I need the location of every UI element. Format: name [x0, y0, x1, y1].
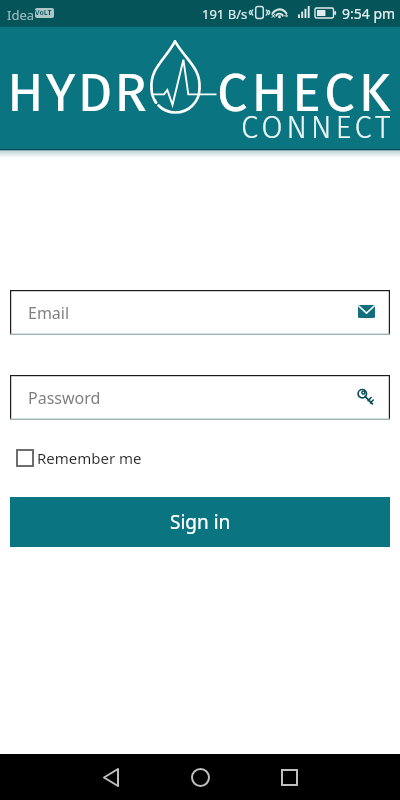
button[interactable]: Home: [170, 754, 230, 800]
staticText: CONNECT: [241, 109, 395, 146]
staticText: 191 B/s: [202, 5, 248, 23]
button[interactable]: Sign in: [10, 497, 390, 547]
staticText: Remember me: [37, 448, 142, 468]
staticText: Email: [28, 302, 70, 324]
button[interactable]: Remember me: [16, 448, 142, 468]
staticText: Password: [28, 387, 101, 409]
staticText: CHECK: [217, 61, 395, 126]
staticText: Idea: [7, 6, 35, 24]
staticText: HYDR: [7, 61, 149, 126]
button[interactable]: Recents: [259, 754, 319, 800]
staticText: Sign in: [170, 509, 231, 535]
button[interactable]: Password: [10, 375, 390, 420]
button[interactable]: Back: [81, 754, 141, 800]
staticText: VoLTE: [35, 8, 54, 18]
button[interactable]: Email: [10, 290, 390, 335]
staticText: 9:54 pm: [342, 4, 396, 23]
